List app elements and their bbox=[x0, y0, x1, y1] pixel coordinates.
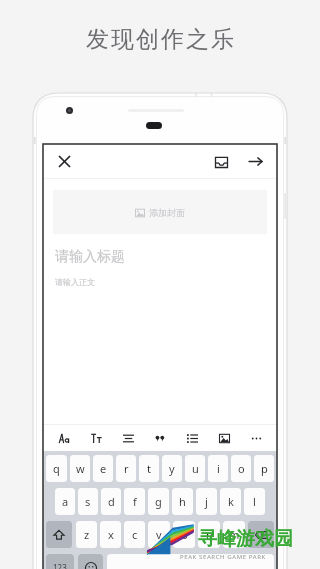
button[interactable]: e bbox=[93, 455, 113, 482]
staticText: 添加封面 bbox=[149, 207, 185, 218]
staticText: g bbox=[155, 494, 162, 509]
staticText: 请输入标题 bbox=[55, 248, 125, 266]
staticText: 请输入正文 bbox=[55, 277, 95, 287]
button[interactable]: r bbox=[116, 455, 136, 482]
button[interactable]: u bbox=[185, 455, 205, 482]
staticText: PEAK SEARCH GAME PARK bbox=[180, 553, 266, 561]
button[interactable]: v bbox=[148, 521, 170, 548]
staticText: f bbox=[133, 494, 137, 509]
staticText: y bbox=[169, 461, 175, 476]
button[interactable]: Align bbox=[117, 427, 139, 449]
staticText: x bbox=[108, 527, 114, 542]
button[interactable]: Emoji bbox=[78, 554, 103, 569]
staticText: b bbox=[181, 527, 188, 542]
staticText: m bbox=[229, 527, 240, 542]
button[interactable]: Publish bbox=[244, 150, 266, 172]
staticText: 发现创作之乐 bbox=[85, 25, 235, 54]
button[interactable]: t bbox=[139, 455, 159, 482]
staticText: s bbox=[85, 494, 91, 509]
staticText: t bbox=[147, 461, 151, 476]
button[interactable]: q bbox=[46, 455, 67, 482]
staticText: w bbox=[76, 461, 85, 476]
staticText: k bbox=[228, 494, 234, 509]
button[interactable]: w bbox=[70, 455, 90, 482]
button[interactable]: i bbox=[208, 455, 228, 482]
staticText: q bbox=[53, 461, 60, 476]
button[interactable]: p bbox=[254, 455, 274, 482]
button[interactable]: s bbox=[78, 488, 98, 515]
staticText: j bbox=[205, 494, 208, 509]
button[interactable]: Quote bbox=[149, 427, 171, 449]
staticText: d bbox=[108, 494, 115, 509]
staticText: i bbox=[217, 461, 220, 476]
button[interactable]: Font size bbox=[85, 427, 107, 449]
button[interactable]: m bbox=[223, 521, 245, 548]
button[interactable]: o bbox=[231, 455, 251, 482]
button[interactable]: z bbox=[76, 521, 97, 548]
button[interactable]: h bbox=[172, 488, 193, 515]
button[interactable]: Shift bbox=[46, 521, 72, 548]
staticText: c bbox=[132, 527, 138, 542]
staticText: o bbox=[238, 461, 245, 476]
staticText: r bbox=[124, 461, 129, 476]
button[interactable]: 添加封面 bbox=[53, 190, 267, 234]
button[interactable]: Delete bbox=[248, 521, 274, 548]
staticText: l bbox=[253, 494, 256, 509]
staticText: z bbox=[84, 527, 90, 542]
staticText: v bbox=[156, 527, 162, 542]
button[interactable]: c bbox=[124, 521, 145, 548]
staticText: n bbox=[206, 527, 213, 542]
staticText: e bbox=[100, 461, 107, 476]
button[interactable]: 123 bbox=[46, 554, 74, 569]
button[interactable]: g bbox=[148, 488, 169, 515]
button[interactable]: x bbox=[100, 521, 121, 548]
button[interactable]: j bbox=[196, 488, 217, 515]
button[interactable]: a bbox=[55, 488, 75, 515]
button[interactable]: l bbox=[244, 488, 265, 515]
staticText: 寻峰游戏园 bbox=[198, 527, 293, 551]
staticText: h bbox=[179, 494, 186, 509]
button[interactable]: n bbox=[198, 521, 220, 548]
button[interactable]: b bbox=[173, 521, 195, 548]
button[interactable]: Close bbox=[54, 151, 74, 171]
button[interactable]: y bbox=[162, 455, 182, 482]
staticText: 123 bbox=[53, 562, 67, 569]
staticText: a bbox=[62, 494, 69, 509]
button[interactable]: More bbox=[245, 427, 267, 449]
staticText: p bbox=[261, 461, 268, 476]
staticText: u bbox=[192, 461, 199, 476]
button[interactable]: Text style bbox=[53, 427, 75, 449]
button[interactable]: Space bbox=[107, 554, 274, 569]
button[interactable]: Drafts bbox=[210, 150, 232, 172]
button[interactable]: Insert image bbox=[213, 427, 235, 449]
button[interactable]: k bbox=[220, 488, 241, 515]
button[interactable]: d bbox=[101, 488, 121, 515]
button[interactable]: List bbox=[181, 427, 203, 449]
button[interactable]: f bbox=[124, 488, 145, 515]
